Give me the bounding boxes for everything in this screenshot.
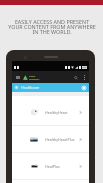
other: Favourite xyxy=(81,85,87,91)
button[interactable]: HealPlus xyxy=(12,153,89,179)
staticText: HealthyHeart xyxy=(45,110,68,115)
staticText: SOME COMPANY xyxy=(29,75,40,80)
button[interactable]: More options xyxy=(80,73,88,81)
button[interactable]: HealthyHeart xyxy=(12,99,89,125)
button[interactable]: Category xyxy=(12,83,89,92)
staticText: EASILY ACCESS AND PRESENT YOUR CONTENT F… xyxy=(8,18,96,35)
staticText: 12:00 xyxy=(82,66,87,69)
button[interactable]: HealthyHeartPlus xyxy=(12,126,89,152)
other: Category xyxy=(14,85,19,90)
button[interactable]: Search xyxy=(71,73,80,82)
staticText: HealPlus xyxy=(45,164,60,169)
staticText: HealthyHeartPlus xyxy=(45,137,75,142)
staticText: Healthcare xyxy=(21,85,40,90)
button[interactable]: Open navigation menu xyxy=(14,74,21,81)
